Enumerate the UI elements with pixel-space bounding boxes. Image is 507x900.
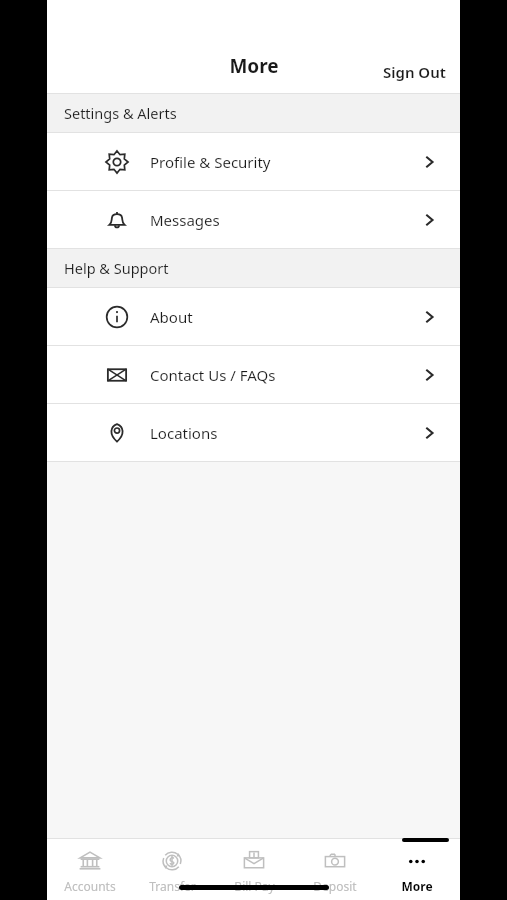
button[interactable]: About [47, 288, 460, 345]
button[interactable]: Locations [47, 404, 460, 461]
staticText: Bill Pay [234, 878, 275, 894]
button[interactable]: Transfer [133, 838, 211, 900]
staticText: Accounts [64, 878, 116, 894]
staticText: Contact Us / FAQs [150, 365, 276, 385]
staticText: More [401, 878, 433, 894]
button[interactable]: Sign Out [383, 62, 460, 93]
staticText: About [150, 307, 193, 327]
staticText: Transfer [149, 878, 196, 894]
button[interactable]: Bill Pay [215, 838, 293, 900]
button[interactable]: Contact Us / FAQs [47, 346, 460, 403]
staticText: Locations [150, 423, 218, 443]
button[interactable]: More [378, 838, 456, 900]
button[interactable]: Messages [47, 191, 460, 248]
button[interactable]: Accounts [51, 838, 129, 900]
button[interactable]: Deposit [296, 838, 374, 900]
staticText: Messages [150, 210, 220, 230]
staticText: Sign Out [383, 62, 446, 82]
button[interactable]: Profile & Security [47, 133, 460, 190]
staticText: Help & Support [64, 258, 169, 278]
staticText: Profile & Security [150, 152, 271, 172]
staticText: Settings & Alerts [64, 103, 177, 123]
staticText: More [229, 53, 279, 79]
staticText: Deposit [313, 878, 357, 894]
